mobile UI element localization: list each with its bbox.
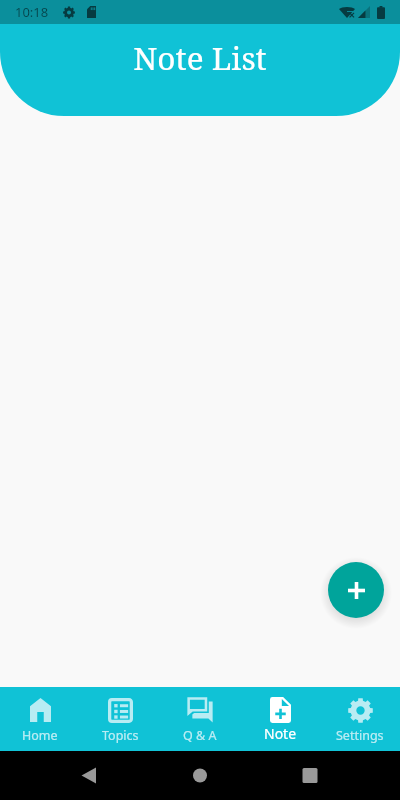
staticText: Note [264,724,297,743]
staticText: Settings [336,727,384,744]
staticText: 10:18 [15,3,49,21]
button[interactable]: Topics [80,687,160,751]
button[interactable]: Settings [320,687,400,751]
button[interactable]: Home [0,687,80,751]
button[interactable]: Add note [328,562,384,618]
staticText: Note List [133,36,267,79]
staticText: Q & A [183,727,217,744]
staticText: Topics [102,727,139,744]
button[interactable]: Note [240,687,320,751]
staticText: Home [22,727,58,744]
button[interactable]: Q & A [160,687,240,751]
